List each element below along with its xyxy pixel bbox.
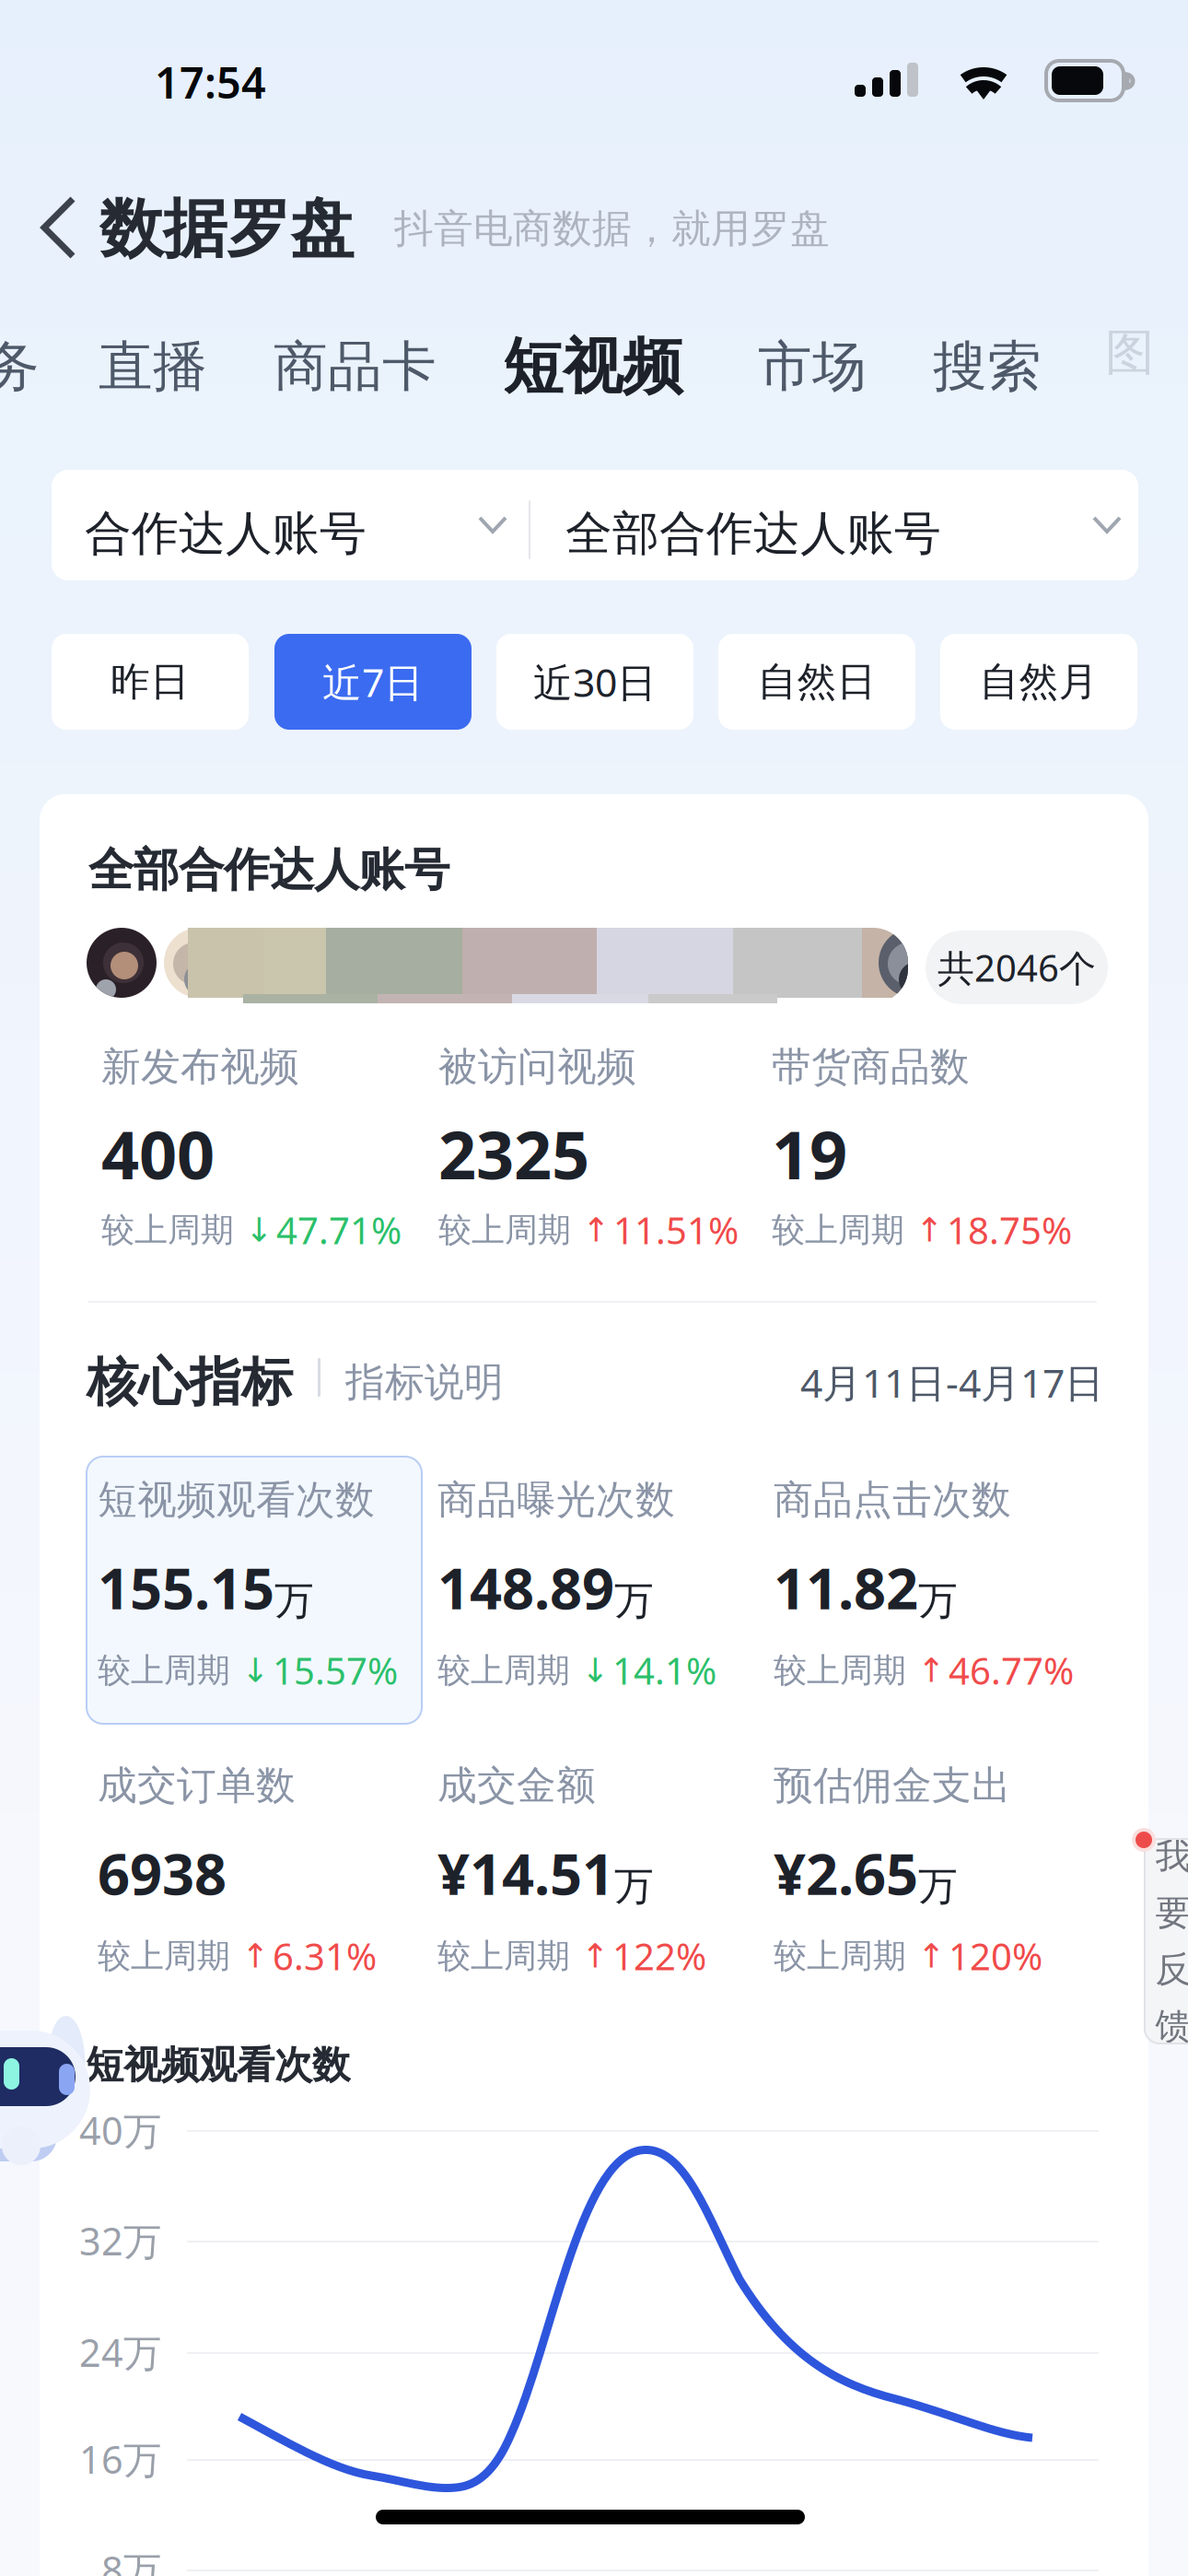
staticText: 11.82 (774, 1550, 918, 1625)
staticText: 较上周期 (101, 1210, 234, 1250)
button[interactable]: 全部合作达人账号 (530, 470, 1140, 590)
staticText: 较上周期 (774, 1936, 906, 1976)
button[interactable]: 我 (1145, 1839, 1188, 2043)
staticText: 预估佣金支出 (774, 1761, 1011, 1810)
staticText: 商品点击次数 (774, 1476, 1011, 1524)
staticText: 抖音电商数据，就用罗盘 (394, 205, 830, 253)
button[interactable]: 直播 (93, 321, 213, 413)
staticText: 较上周期 (98, 1936, 230, 1976)
staticText: 馈 (1155, 2004, 1188, 2048)
staticText: 市场 (758, 334, 867, 400)
staticText: 全部合作达人账号 (565, 505, 941, 562)
staticText: 17:54 (155, 53, 266, 111)
staticText: 较上周期 (774, 1650, 906, 1691)
staticText: 47.71% (276, 1205, 402, 1254)
button[interactable]: 自然月 (940, 634, 1137, 730)
staticText: ↑ (241, 1937, 269, 1975)
staticText: 15.57% (273, 1646, 398, 1695)
staticText: 400 (101, 1109, 215, 1198)
staticText: ↑ (581, 1937, 609, 1975)
staticText: 成交订单数 (98, 1761, 296, 1810)
staticText: 万 (614, 1862, 654, 1911)
staticText: ↓ (581, 1652, 609, 1689)
staticText: 11.51% (613, 1205, 739, 1254)
staticText: 自然日 (757, 658, 876, 706)
staticText: 32万 (79, 2215, 161, 2266)
staticText: 核心指标 (87, 1351, 293, 1414)
staticText: 2325 (438, 1109, 589, 1198)
staticText: 自然月 (979, 658, 1098, 706)
button[interactable]: 务 (0, 321, 45, 413)
button[interactable]: 商品卡 (268, 321, 442, 413)
staticText: 带货商品数 (772, 1043, 970, 1091)
button[interactable]: 近7日 (274, 634, 472, 730)
staticText: 16万 (79, 2434, 161, 2484)
button[interactable]: 昨日 (52, 634, 249, 730)
staticText: 万 (918, 1577, 958, 1625)
staticText: 24万 (79, 2327, 161, 2377)
staticText: 120% (949, 1931, 1042, 1980)
staticText: 短视频观看次数 (86, 2042, 350, 2088)
staticText: 46.77% (949, 1646, 1074, 1695)
staticText: 全部合作达人账号 (88, 842, 449, 898)
staticText: 148.89 (437, 1550, 614, 1625)
staticText: 8万 (101, 2544, 161, 2576)
staticText: 较上周期 (437, 1936, 570, 1976)
staticText: 我 (1155, 1834, 1188, 1878)
staticText: 较上周期 (437, 1650, 570, 1691)
staticText: ↑ (582, 1211, 610, 1249)
staticText: 新发布视频 (101, 1043, 299, 1091)
button[interactable]: 短视频 (497, 317, 688, 417)
staticText: ↓ (245, 1211, 273, 1249)
staticText: 短视频观看次数 (98, 1476, 375, 1524)
staticText: 反 (1155, 1948, 1188, 1991)
staticText: 要 (1155, 1891, 1188, 1935)
staticText: 近30日 (533, 656, 657, 708)
staticText: ↑ (915, 1211, 943, 1249)
staticText: 图 (1105, 322, 1154, 383)
button[interactable]: 搜索 (927, 321, 1047, 413)
staticText: 数据罗盘 (99, 190, 354, 268)
staticText: 较上周期 (98, 1650, 230, 1691)
staticText: 被访问视频 (438, 1043, 636, 1091)
staticText: 122% (612, 1931, 706, 1980)
staticText: 40万 (79, 2105, 161, 2155)
button[interactable]: 指标说明 (345, 1352, 504, 1412)
staticText: 万 (614, 1577, 654, 1625)
staticText: 商品卡 (274, 334, 437, 400)
button[interactable]: 合作达人账号 (52, 470, 529, 590)
staticText: 18.75% (947, 1205, 1072, 1254)
button[interactable]: 自然日 (718, 634, 915, 730)
staticText: 直播 (99, 334, 207, 400)
staticText: ↑ (917, 1652, 945, 1689)
button[interactable]: 市场 (752, 321, 872, 413)
staticText: 6.31% (273, 1931, 377, 1980)
staticText: 商品曝光次数 (437, 1476, 675, 1524)
staticText: 较上周期 (438, 1210, 571, 1250)
button[interactable]: 返回 (17, 177, 105, 276)
staticText: 合作达人账号 (85, 505, 367, 562)
button[interactable]: 近30日 (496, 634, 693, 730)
staticText: 14.1% (612, 1646, 716, 1695)
staticText: 搜索 (933, 334, 1042, 400)
staticText: 万 (274, 1577, 314, 1625)
staticText: 指标说明 (345, 1358, 504, 1406)
staticText: 短视频 (503, 330, 682, 404)
staticText: 共2046个 (938, 943, 1096, 992)
staticText: 成交金额 (437, 1761, 596, 1810)
staticText: 较上周期 (772, 1210, 904, 1250)
staticText: ¥14.51 (437, 1836, 614, 1911)
staticText: 务 (0, 334, 40, 400)
staticText: 4月11日-4月17日 (800, 1356, 1104, 1408)
staticText: ↓ (241, 1652, 269, 1689)
staticText: 155.15 (98, 1550, 274, 1625)
staticText: 6938 (98, 1836, 227, 1911)
staticText: 近7日 (322, 656, 424, 708)
staticText: ↑ (917, 1937, 945, 1975)
staticText: 19 (772, 1109, 847, 1198)
staticText: 万 (918, 1862, 958, 1911)
staticText: ¥2.65 (774, 1836, 918, 1911)
staticText: 昨日 (111, 658, 190, 706)
